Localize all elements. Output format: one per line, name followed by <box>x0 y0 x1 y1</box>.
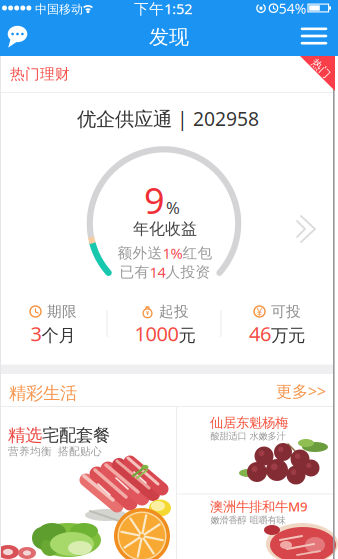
staticText: 下午1:52 <box>134 0 192 18</box>
staticText: 营养均衡 搭配贴心 <box>8 445 102 458</box>
staticText: 嫩滑香醇 咀嚼有味 <box>210 514 285 526</box>
staticText: 热门理财 <box>10 65 70 83</box>
staticText: 仙居东魁杨梅 <box>210 414 288 431</box>
staticText: 46 <box>249 320 271 347</box>
staticText: 个月 <box>41 325 75 346</box>
staticText: 优企供应通 | 202958 <box>77 105 259 132</box>
staticText: 发现 <box>149 25 189 49</box>
staticText: 3 <box>30 320 41 347</box>
staticText: 额外送 <box>117 244 162 262</box>
staticText: 1% <box>162 243 182 263</box>
staticText: 已有 <box>119 263 149 281</box>
staticText: 万元 <box>271 325 305 346</box>
staticText: 热门 <box>310 62 332 75</box>
staticText: 54% <box>278 0 306 18</box>
staticText: 起投 <box>159 302 189 320</box>
staticText: 精彩生活 <box>9 382 77 404</box>
staticText: % <box>166 196 180 219</box>
staticText: 更多>> <box>276 380 326 402</box>
staticText: 中国移动 <box>35 2 83 17</box>
staticText: 精选 <box>8 424 42 446</box>
staticText: 可投 <box>271 302 301 320</box>
staticText: 宅配套餐 <box>42 424 110 446</box>
staticText: ¥ <box>256 305 262 319</box>
staticText: 元 <box>178 325 195 346</box>
staticText: 9 <box>144 175 165 224</box>
staticText: 澳洲牛排和牛M9 <box>210 497 308 515</box>
staticText: 14 <box>149 262 165 282</box>
staticText: 1000 <box>134 320 178 347</box>
staticText: 年化收益 <box>133 219 197 239</box>
staticText: 酸甜适口 水嫩多汁 <box>210 430 285 442</box>
staticText: 红包 <box>182 244 212 262</box>
staticText: 期限 <box>47 302 77 320</box>
staticText: 人投资 <box>165 263 210 281</box>
